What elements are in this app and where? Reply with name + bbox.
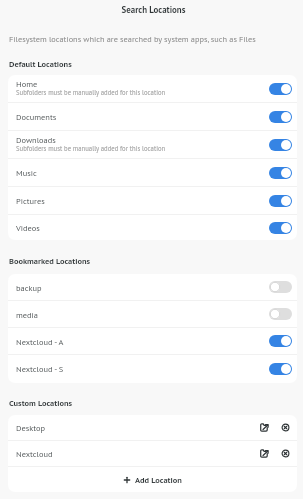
button[interactable]: Toggle on [269,167,292,179]
staticText: Subfolders must be manually added for th… [16,144,166,153]
staticText: Home [16,78,38,89]
button[interactable]: Nextcloud - S [8,355,297,382]
button[interactable]: Add Location [8,467,297,492]
staticText: Bookmarked Locations [9,255,91,266]
staticText: Desktop [16,422,257,433]
button[interactable]: Pictures [8,187,297,215]
staticText: Music [16,167,37,178]
button[interactable]: Nextcloud [8,441,297,467]
button[interactable]: media [8,301,297,328]
staticText: Nextcloud - S [16,363,64,374]
button[interactable]: Toggle off [269,308,292,320]
staticText: Add Location [135,474,182,485]
button[interactable]: backup [8,274,297,301]
button[interactable]: Remove location [278,420,293,435]
staticText: Videos [16,222,40,233]
button[interactable]: Documents [8,103,297,131]
button[interactable]: Toggle on [269,335,292,347]
button[interactable]: Downloads [8,131,297,159]
staticText: Subfolders must be manually added for th… [16,88,166,97]
staticText: backup [16,282,42,293]
button[interactable]: Open location [257,446,272,461]
button[interactable]: Desktop [8,415,297,441]
button[interactable]: Toggle on [269,363,292,375]
button[interactable]: Toggle on [269,222,292,234]
button[interactable]: Music [8,159,297,187]
staticText: Pictures [16,195,45,206]
staticText: Nextcloud [16,448,257,459]
button[interactable]: Toggle off [269,281,292,293]
button[interactable]: Open location [257,420,272,435]
button[interactable]: Nextcloud - A [8,328,297,355]
staticText: Filesystem locations which are searched … [9,34,256,45]
button[interactable]: Toggle on [269,195,292,207]
staticText: Custom Locations [9,397,73,408]
staticText: media [16,309,39,320]
button[interactable]: Toggle on [269,111,292,123]
staticText: Default Locations [9,58,72,69]
staticText: Nextcloud - A [16,336,64,347]
staticText: Downloads [16,134,56,145]
staticText: Search Locations [2,4,303,16]
button[interactable]: Toggle on [269,139,292,151]
button[interactable]: Videos [8,215,297,240]
button[interactable]: Toggle on [269,83,292,95]
button[interactable]: Remove location [278,446,293,461]
staticText: Documents [16,111,57,122]
button[interactable]: Home [8,75,297,103]
